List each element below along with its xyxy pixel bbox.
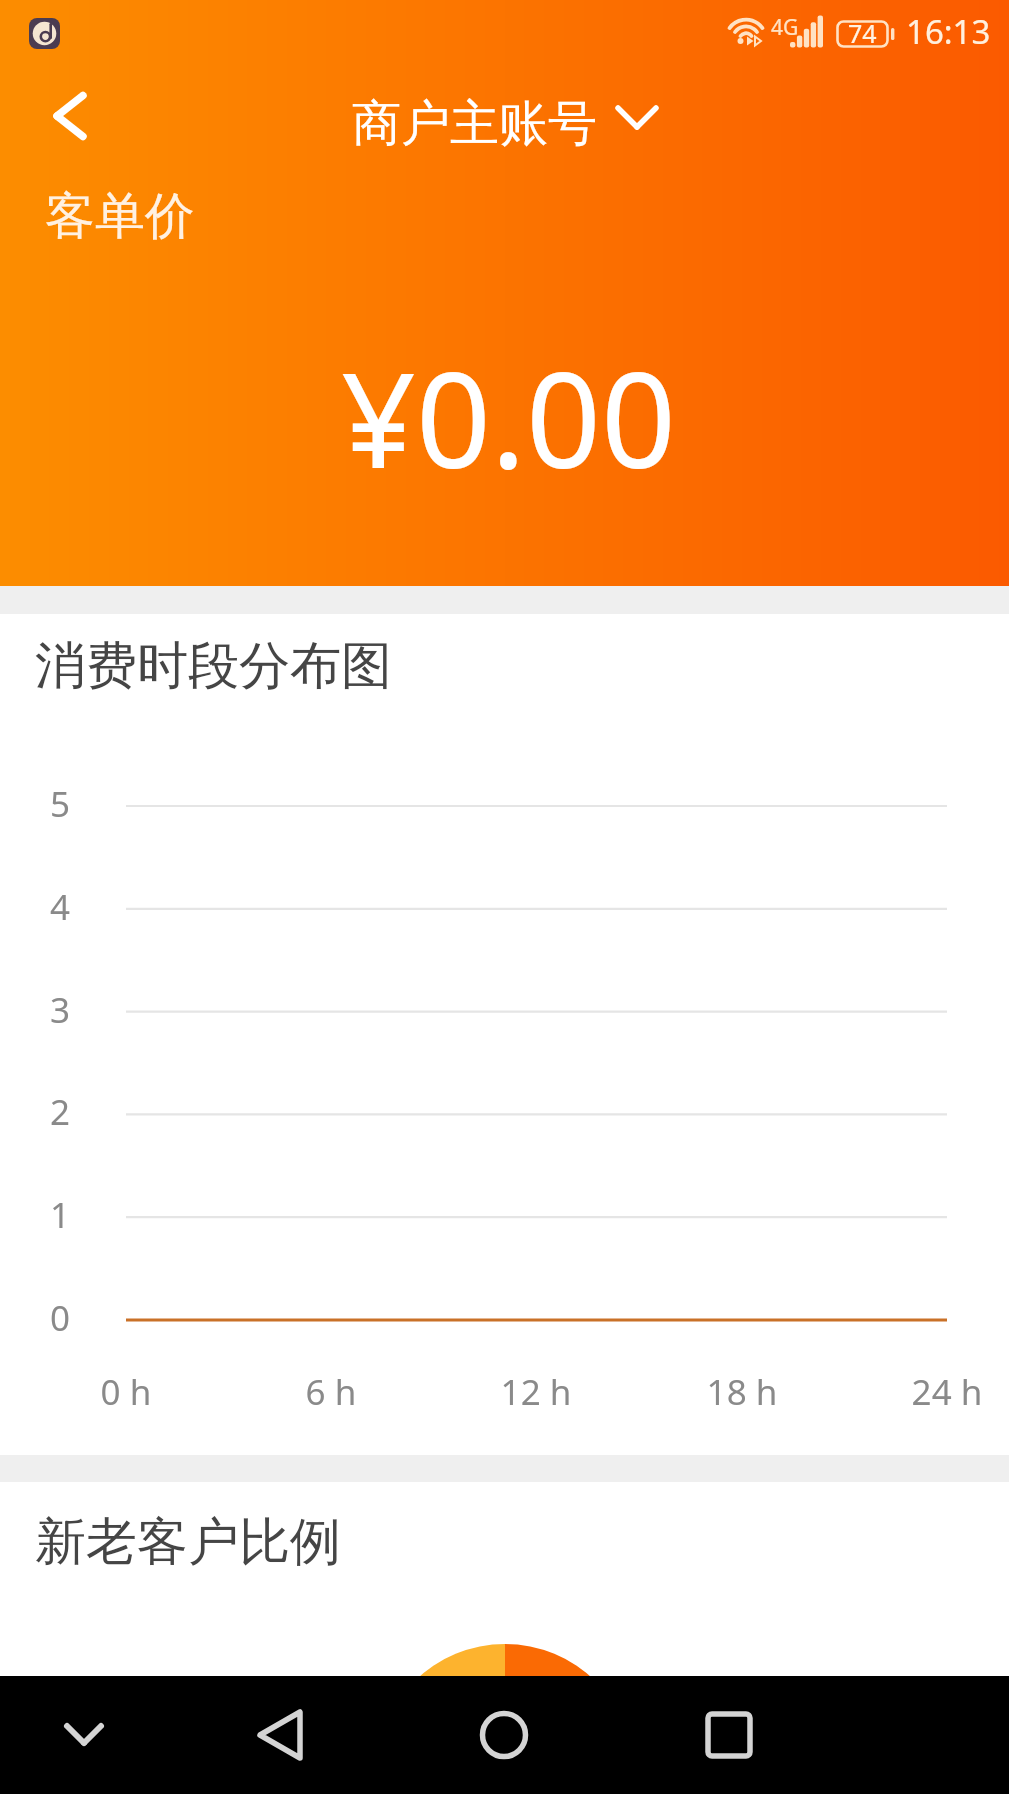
staticText: 3 [20, 986, 70, 1034]
staticText: 16:13 [906, 9, 991, 54]
button[interactable]: Recent apps [634, 1676, 824, 1794]
button[interactable]: Back [25, 71, 115, 161]
staticText: ¥0.00 [341, 328, 676, 506]
staticText: 6 h [261, 1368, 401, 1416]
staticText: 4G [771, 13, 799, 42]
staticText: 新老客户比例 [35, 1510, 341, 1574]
staticText: 客单价 [45, 185, 195, 248]
staticText: 74 [848, 16, 877, 44]
staticText: 4 [20, 883, 70, 931]
button[interactable]: 商户主账号 [332, 78, 675, 170]
staticText: 0 h [56, 1368, 196, 1416]
staticText: 5 [20, 780, 70, 828]
staticText: 12 h [466, 1368, 606, 1416]
staticText: 0 [20, 1294, 70, 1342]
staticText: 消费时段分布图 [35, 634, 392, 698]
staticText: 24 h [877, 1368, 1009, 1416]
staticText: 18 h [672, 1368, 812, 1416]
staticText: 1 [20, 1191, 70, 1239]
button[interactable]: Hide navigation bar [0, 1676, 169, 1794]
button[interactable]: Back [185, 1676, 375, 1794]
button[interactable]: Home [409, 1676, 599, 1794]
staticText: 商户主账号 [352, 93, 597, 155]
staticText: 2 [20, 1088, 70, 1136]
